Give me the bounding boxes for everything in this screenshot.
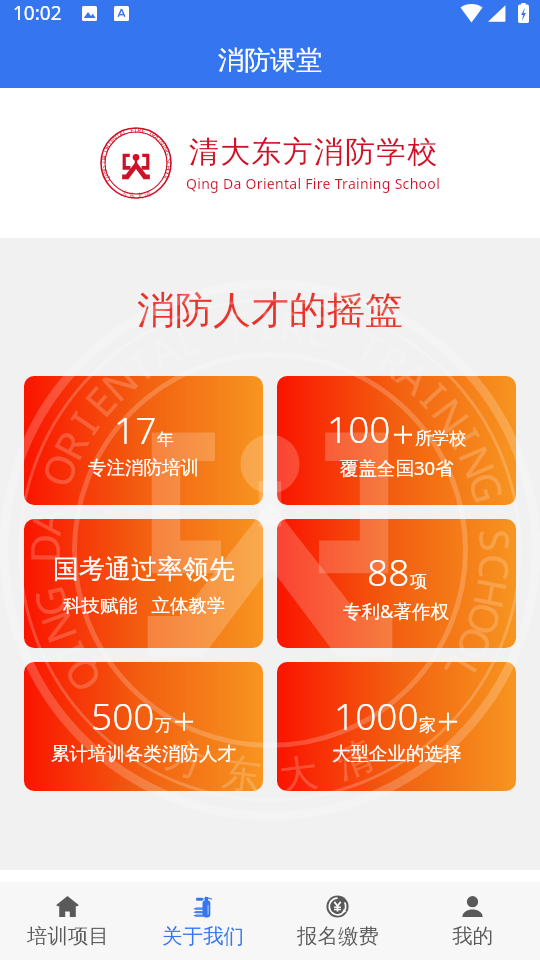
button[interactable]: Registration payment <box>270 882 405 960</box>
staticText: 覆盖全国30省 <box>340 455 454 480</box>
staticText: 17 <box>114 404 157 454</box>
staticText: 家 <box>419 715 436 736</box>
staticText: 消防人才的摇篮 <box>137 286 403 334</box>
staticText: 培训项目 <box>27 923 109 949</box>
staticText: 我的 <box>452 923 493 949</box>
staticText: 消防课堂 <box>218 44 322 77</box>
staticText: 科技赋能 立体教学 <box>63 592 226 617</box>
staticText: 报名缴费 <box>297 923 379 949</box>
staticText: 100 <box>327 403 391 453</box>
staticText: 年 <box>157 429 174 450</box>
staticText: 国考通过率领先 <box>53 553 235 586</box>
button[interactable]: 88 <box>277 519 516 648</box>
staticText: 所学校 <box>415 428 466 449</box>
button[interactable]: Mine <box>405 882 540 960</box>
staticText: 专注消防培训 <box>88 456 199 479</box>
button[interactable]: 500 <box>24 662 263 791</box>
staticText: 88 <box>367 546 410 596</box>
staticText: 累计培训各类消防人才 <box>51 742 236 765</box>
staticText: Qing Da Oriental Fire Training School <box>186 174 441 193</box>
button[interactable]: Training projects <box>0 882 135 960</box>
staticText: 万 <box>155 715 172 736</box>
staticText: 项 <box>410 571 427 592</box>
staticText: 清大东方消防学校 <box>189 133 439 171</box>
staticText: 专利&著作权 <box>343 598 450 623</box>
staticText: 1000 <box>334 690 419 740</box>
staticText: 500 <box>91 690 155 740</box>
button[interactable]: 100 <box>277 376 516 505</box>
button[interactable]: 1000 <box>277 662 516 791</box>
button[interactable]: About us <box>135 882 270 960</box>
staticText: 10:02 <box>13 0 62 26</box>
button[interactable]: 17 <box>24 376 263 505</box>
staticText: 关于我们 <box>162 923 244 949</box>
staticText: 大型企业的选择 <box>332 742 462 765</box>
button[interactable]: 国考通过率领先 <box>24 519 263 648</box>
